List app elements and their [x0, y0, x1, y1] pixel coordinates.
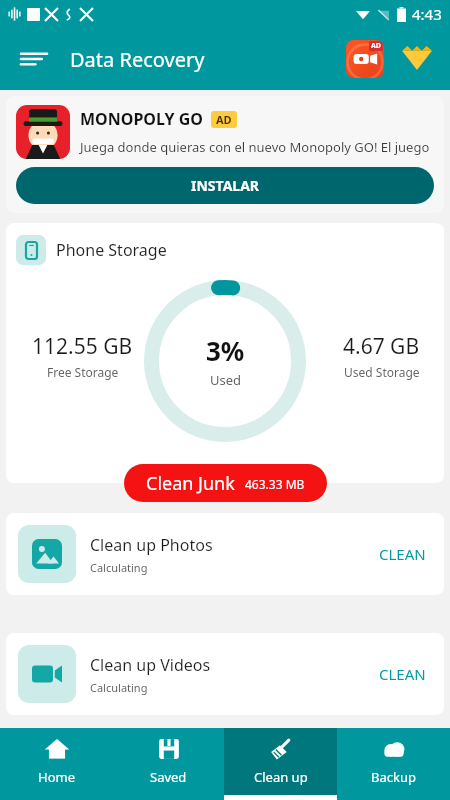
staticText: Juega donde quieras con el nuevo Monopol…	[80, 138, 434, 156]
button[interactable]: Open navigation menu	[10, 35, 58, 83]
staticText: Clean up Videos	[90, 654, 211, 676]
staticText: 4.67 GB	[343, 332, 420, 361]
staticText: Clean Junk	[146, 471, 235, 496]
staticText: Clean up	[254, 768, 308, 786]
button[interactable]: Clean Junk	[124, 464, 327, 502]
staticText: 463.33 MB	[245, 476, 305, 492]
staticText: Data Recovery	[70, 46, 205, 73]
button[interactable]: Clean up Videos	[6, 633, 444, 715]
staticText: Phone Storage	[56, 239, 167, 261]
staticText: Home	[38, 768, 75, 786]
staticText: CLEAN	[379, 544, 426, 564]
staticText: 3%	[206, 333, 245, 368]
staticText: CLEAN	[379, 664, 426, 684]
button[interactable]: Home	[0, 728, 112, 800]
staticText: Clean up Photos	[90, 534, 213, 556]
button[interactable]: CLEAN	[373, 658, 432, 690]
button[interactable]: Phone Storage	[6, 223, 444, 483]
button[interactable]: Backup	[337, 728, 450, 800]
staticText: Used Storage	[344, 364, 420, 380]
staticText: AD	[216, 112, 232, 127]
staticText: Used	[210, 371, 242, 389]
button[interactable]: INSTALAR	[16, 167, 434, 204]
button[interactable]: CLEAN	[373, 538, 432, 570]
button[interactable]: MONOPOLY GO	[6, 96, 444, 213]
staticText: Backup	[371, 768, 416, 786]
staticText: Calculating	[90, 680, 148, 695]
button[interactable]: Premium	[396, 38, 438, 80]
staticText: Free Storage	[47, 364, 119, 380]
button[interactable]: Clean up Photos	[6, 513, 444, 595]
staticText: 4:43	[412, 4, 442, 24]
button[interactable]: Clean up	[224, 728, 337, 800]
staticText: MONOPOLY GO	[80, 108, 203, 130]
button[interactable]: Screen recorder ad	[344, 38, 386, 80]
staticText: Saved	[150, 768, 187, 786]
staticText: Calculating	[90, 560, 148, 575]
button[interactable]: Saved	[112, 728, 224, 800]
staticText: AD	[371, 41, 381, 51]
staticText: 112.55 GB	[32, 332, 133, 361]
staticText: INSTALAR	[191, 176, 260, 195]
